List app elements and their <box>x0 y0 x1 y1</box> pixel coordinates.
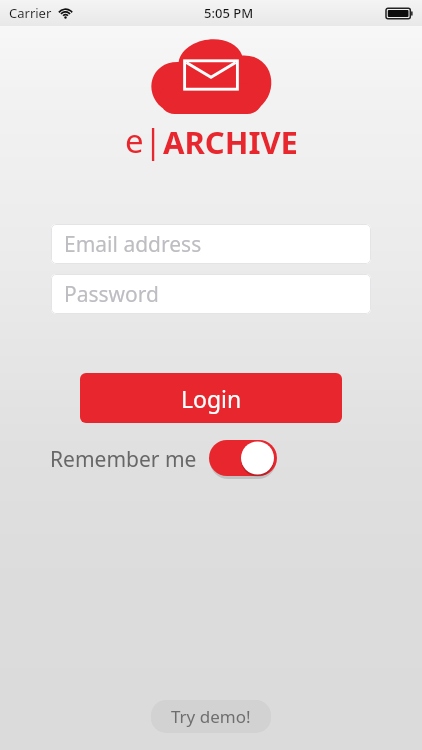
button[interactable]: Try demo! <box>151 700 271 733</box>
staticText: Carrier <box>9 4 52 22</box>
button[interactable]: Login <box>80 373 342 423</box>
button[interactable]: Email address <box>51 224 371 264</box>
staticText: Remember me <box>50 445 197 474</box>
staticText: e <box>125 118 144 163</box>
staticText: ARCHIVE <box>163 121 298 163</box>
button[interactable]: Password <box>51 274 371 314</box>
staticText: 5:05 PM <box>204 4 254 22</box>
button[interactable]: Remember me <box>50 438 277 480</box>
staticText: Password <box>64 280 159 309</box>
other: Remember me toggle <box>209 440 277 478</box>
staticText: Try demo! <box>171 705 251 728</box>
staticText: Login <box>181 383 242 414</box>
staticText: | <box>144 118 163 163</box>
staticText: Email address <box>64 230 202 259</box>
